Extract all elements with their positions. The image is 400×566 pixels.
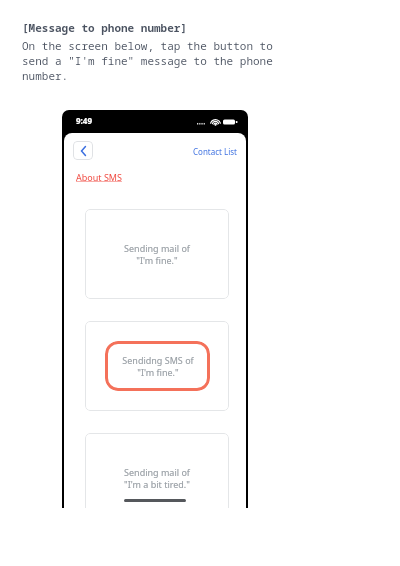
staticText: Contact List <box>193 146 237 157</box>
staticText: "I'm a bit tired." <box>124 478 190 490</box>
button[interactable]: Sendidng SMS of <box>85 321 229 411</box>
staticText: Sending mail of <box>124 466 190 478</box>
staticText: number. <box>22 68 69 83</box>
button[interactable]: Contact List <box>191 143 239 160</box>
button[interactable]: Back <box>73 141 93 160</box>
staticText: Sending mail of <box>124 242 190 254</box>
button[interactable]: Sending mail of <box>85 433 229 508</box>
staticText: "I'm fine." <box>136 254 178 266</box>
button[interactable]: Sending mail of <box>85 209 229 299</box>
staticText: [Message to phone number] <box>22 20 187 35</box>
staticText: "I'm fine." <box>137 366 179 378</box>
button[interactable]: About SMS <box>74 169 124 185</box>
staticText: On the screen below, tap the button to <box>22 38 273 53</box>
staticText: 9:49 <box>76 115 92 126</box>
staticText: About SMS <box>76 171 122 183</box>
staticText: send a "I'm fine" message to the phone <box>22 53 273 68</box>
staticText: Sendidng SMS of <box>122 354 194 366</box>
